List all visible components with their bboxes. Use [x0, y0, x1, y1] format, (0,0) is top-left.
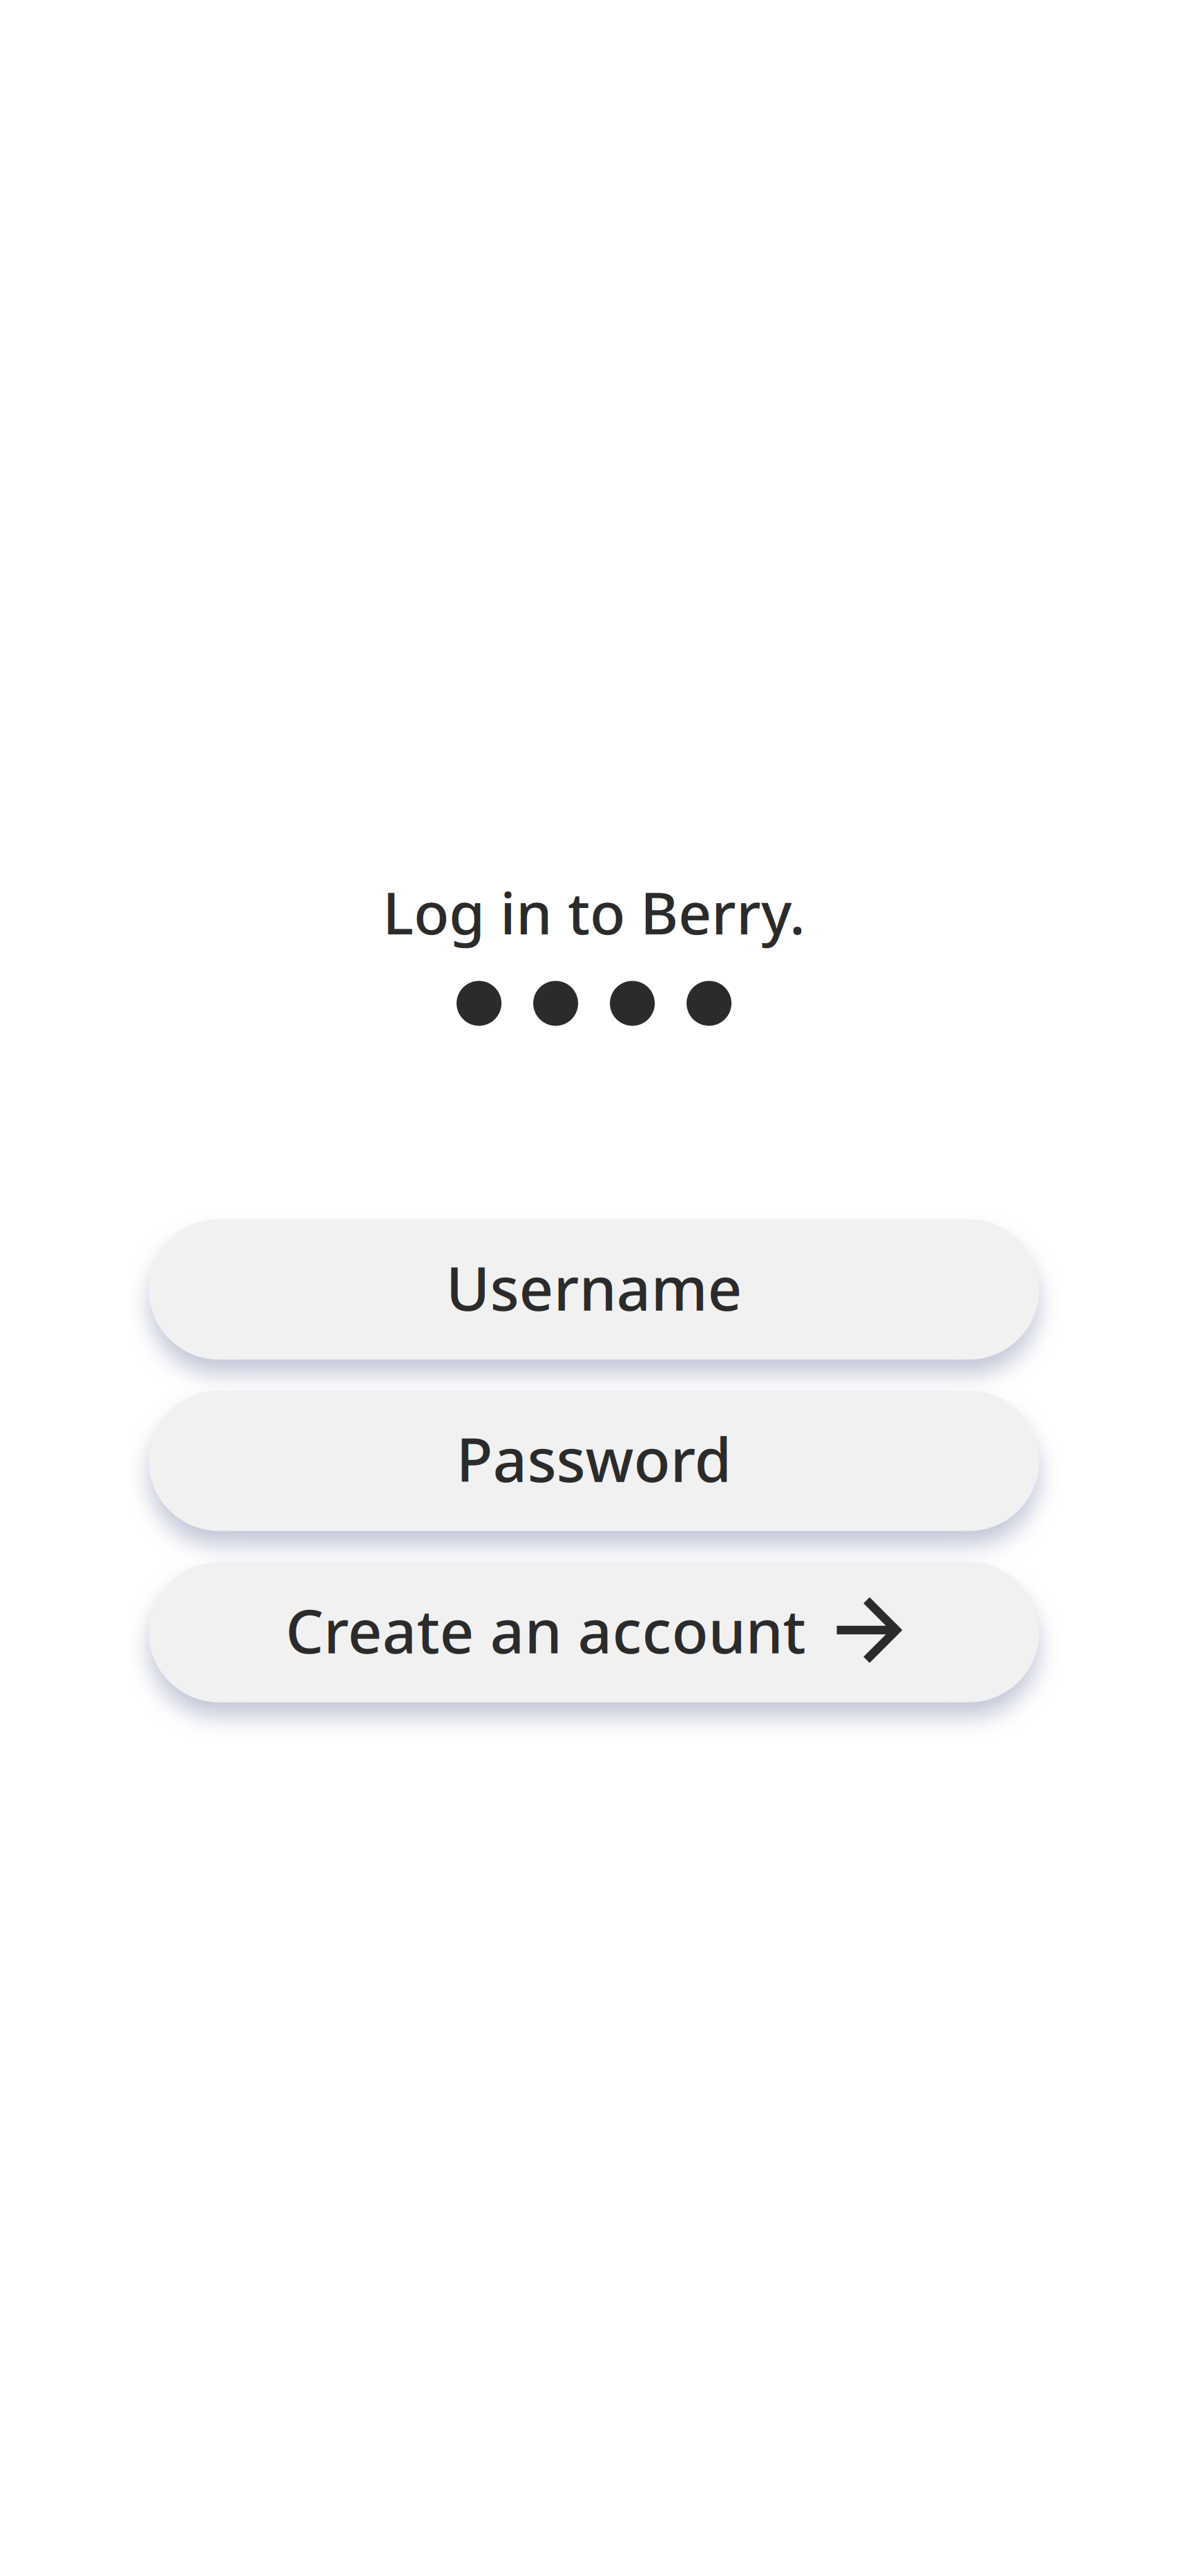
staticText: Password	[456, 1419, 732, 1498]
button[interactable]: Username	[149, 1219, 1039, 1360]
staticText: Log in to Berry.	[383, 873, 805, 950]
button[interactable]: Password	[149, 1391, 1039, 1531]
staticText: Create an account	[286, 1590, 806, 1670]
button[interactable]: Create an account	[149, 1562, 1039, 1702]
staticText: Username	[446, 1248, 742, 1327]
